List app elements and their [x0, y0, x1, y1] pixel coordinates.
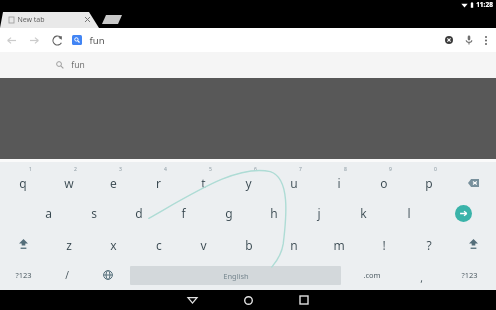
staticText: c: [156, 237, 162, 253]
button[interactable]: j: [296, 197, 341, 229]
button[interactable]: .com: [343, 260, 401, 290]
staticText: 0: [434, 166, 437, 173]
button[interactable]: Go: [431, 197, 496, 229]
staticText: English: [223, 271, 249, 281]
staticText: e: [110, 175, 117, 191]
staticText: t: [201, 175, 206, 191]
button[interactable]: !: [361, 229, 406, 260]
button[interactable]: More options: [479, 34, 492, 47]
staticText: !: [382, 237, 386, 253]
button[interactable]: b: [226, 229, 271, 260]
staticText: 1: [29, 166, 32, 173]
staticText: i: [337, 175, 341, 191]
button[interactable]: c: [136, 229, 181, 260]
staticText: New tab: [17, 15, 45, 25]
staticText: h: [270, 205, 278, 221]
staticText: x: [110, 237, 117, 253]
staticText: fun: [89, 34, 105, 47]
staticText: d: [135, 205, 143, 221]
staticText: 6: [254, 166, 257, 173]
staticText: fun: [71, 59, 85, 71]
button[interactable]: 4: [136, 162, 181, 197]
staticText: 3: [119, 166, 122, 173]
staticText: ?123: [461, 270, 478, 280]
staticText: 5: [209, 166, 212, 173]
staticText: 9: [389, 166, 392, 173]
button[interactable]: 5: [181, 162, 226, 197]
button[interactable]: 9: [361, 162, 406, 197]
button[interactable]: fun: [0, 52, 496, 78]
button[interactable]: Close tab: [82, 14, 93, 25]
staticText: w: [64, 175, 74, 191]
button[interactable]: ,: [401, 260, 442, 290]
button[interactable]: s: [71, 197, 116, 229]
button[interactable]: 1: [0, 162, 46, 197]
staticText: k: [360, 205, 367, 221]
staticText: f: [181, 205, 186, 221]
staticText: q: [19, 175, 27, 191]
button[interactable]: Recent apps: [283, 290, 325, 310]
button[interactable]: Shift: [451, 229, 496, 260]
button[interactable]: Home: [227, 290, 269, 310]
button[interactable]: /: [46, 260, 87, 290]
button[interactable]: g: [206, 197, 251, 229]
staticText: ?: [426, 237, 432, 253]
button[interactable]: ?123: [442, 260, 496, 290]
button[interactable]: Change language: [87, 260, 128, 290]
button[interactable]: m: [316, 229, 361, 260]
staticText: 2: [74, 166, 77, 173]
staticText: 7: [299, 166, 302, 173]
staticText: u: [290, 175, 298, 191]
staticText: g: [225, 205, 233, 221]
staticText: 4: [164, 166, 167, 173]
staticText: v: [200, 237, 207, 253]
button[interactable]: 8: [316, 162, 361, 197]
button[interactable]: Back: [171, 290, 213, 310]
staticText: m: [333, 237, 345, 253]
button[interactable]: l: [386, 197, 431, 229]
staticText: n: [290, 237, 298, 253]
button[interactable]: d: [116, 197, 161, 229]
button[interactable]: 2: [46, 162, 91, 197]
staticText: /: [65, 268, 69, 282]
button[interactable]: Back: [4, 33, 19, 48]
button[interactable]: z: [46, 229, 91, 260]
button[interactable]: v: [181, 229, 226, 260]
button[interactable]: fun: [72, 31, 441, 49]
staticText: l: [407, 205, 411, 221]
button[interactable]: 0: [406, 162, 451, 197]
button[interactable]: f: [161, 197, 206, 229]
button[interactable]: ?: [406, 229, 451, 260]
button[interactable]: a: [26, 197, 71, 229]
staticText: z: [66, 237, 72, 253]
staticText: p: [425, 175, 433, 191]
button[interactable]: x: [91, 229, 136, 260]
staticText: r: [156, 175, 161, 191]
button[interactable]: Reload: [50, 33, 65, 48]
staticText: 11:28: [476, 0, 493, 9]
staticText: s: [91, 205, 97, 221]
button[interactable]: 6: [226, 162, 271, 197]
button[interactable]: n: [271, 229, 316, 260]
button[interactable]: Clear: [441, 32, 457, 48]
staticText: ,: [420, 271, 423, 285]
button[interactable]: Shift: [0, 229, 46, 260]
staticText: .com: [363, 270, 381, 280]
staticText: o: [380, 175, 388, 191]
button[interactable]: 7: [271, 162, 316, 197]
button[interactable]: k: [341, 197, 386, 229]
button[interactable]: Voice search: [461, 32, 477, 48]
button[interactable]: h: [251, 197, 296, 229]
button[interactable]: Backspace: [451, 162, 496, 197]
staticText: y: [245, 175, 252, 191]
staticText: ?123: [15, 270, 32, 280]
button[interactable]: ?123: [0, 260, 46, 290]
button[interactable]: Forward: [27, 33, 42, 48]
staticText: b: [245, 237, 253, 253]
button[interactable]: English: [130, 266, 341, 285]
staticText: a: [45, 205, 52, 221]
button[interactable]: 3: [91, 162, 136, 197]
staticText: 8: [344, 166, 347, 173]
staticText: j: [317, 205, 321, 221]
